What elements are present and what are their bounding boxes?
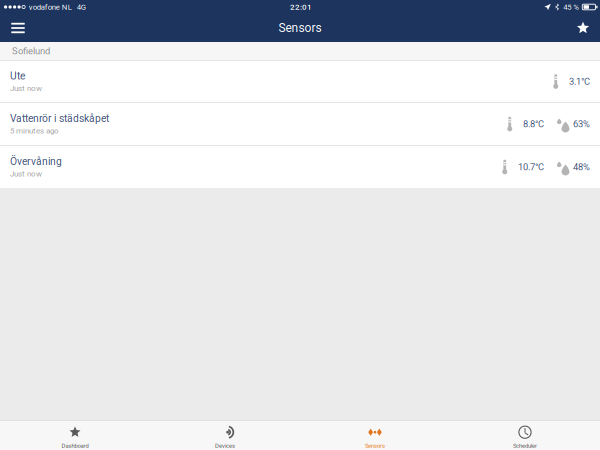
staticText: Dashboard [61,442,88,449]
staticText: Ute [10,70,25,82]
button[interactable]: Menu [0,14,36,42]
staticText: Just now [10,169,42,178]
staticText: 63% [573,118,590,129]
staticText: Sofielund [12,45,50,56]
staticText: 5 minutes ago [10,126,59,135]
staticText: vodafone NL [29,2,72,12]
staticText: 4G [77,2,86,12]
button[interactable]: Scheduler [450,421,600,450]
staticText: Övervåning [10,155,62,167]
staticText: Devices [215,442,235,449]
staticText: 10.7°C [518,161,544,172]
staticText: 3.1°C [569,76,590,87]
staticText: Just now [10,84,42,93]
staticText: Vattenrör i städskåpet [10,112,109,124]
staticText: Sensors [278,21,321,35]
button[interactable]: Devices [150,421,300,450]
button[interactable]: Övervåning [0,146,600,188]
button[interactable]: Ute [0,61,600,102]
staticText: 45 % [563,2,579,12]
staticText: 8.8°C [523,118,544,129]
button[interactable]: Vattenrör i städskåpet [0,103,600,145]
button[interactable]: Sensors [300,421,450,450]
button[interactable]: Dashboard [0,421,150,450]
staticText: 48% [573,161,590,172]
staticText: Scheduler [513,442,537,449]
staticText: Sensors [365,442,385,449]
button[interactable]: Favourites [566,14,600,42]
staticText: 22:01 [290,2,312,12]
